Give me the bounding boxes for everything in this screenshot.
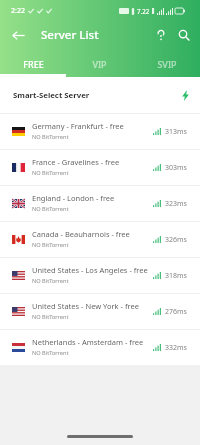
staticText: 7.22 — [137, 7, 150, 15]
staticText: Canada - Beauharnois - free — [32, 229, 130, 239]
staticText: NO BitTorrent — [32, 241, 69, 249]
button[interactable]: Netherlands - Amsterdam - free — [0, 330, 200, 365]
staticText: NO BitTorrent — [32, 133, 69, 141]
button[interactable]: France - Gravelines - free — [0, 150, 200, 185]
staticText: Germany - Frankfurt - free — [32, 121, 124, 131]
button[interactable]: United States - Los Angeles - free — [0, 258, 200, 293]
staticText: England - London - free — [32, 193, 115, 203]
button[interactable]: FREE — [0, 51, 66, 77]
staticText: NO BitTorrent — [32, 277, 69, 285]
staticText: Server List — [41, 27, 99, 43]
button[interactable]: Smart-Select Server — [0, 77, 200, 113]
staticText: NO BitTorrent — [32, 169, 69, 177]
staticText: VIP — [92, 58, 107, 70]
button[interactable]: England - London - free — [0, 186, 200, 221]
staticText: 2:22 — [11, 6, 25, 16]
button[interactable]: SVIP — [133, 51, 200, 77]
button[interactable]: Search — [173, 24, 195, 46]
staticText: United States - New York - free — [32, 301, 139, 311]
staticText: Netherlands - Amsterdam - free — [32, 337, 144, 347]
staticText: 303ms — [165, 163, 187, 173]
staticText: France - Gravelines - free — [32, 157, 120, 167]
button[interactable]: Back — [6, 23, 30, 47]
staticText: FREE — [23, 58, 44, 70]
button[interactable]: Canada - Beauharnois - free — [0, 222, 200, 257]
button[interactable]: Germany - Frankfurt - free — [0, 114, 200, 149]
staticText: 318ms — [165, 271, 187, 281]
button[interactable]: Help — [150, 24, 172, 46]
staticText: 313ms — [165, 127, 187, 137]
button[interactable]: United States - New York - free — [0, 294, 200, 329]
staticText: 323ms — [165, 199, 187, 209]
staticText: Smart-Select Server — [13, 90, 90, 101]
staticText: United States - Los Angeles - free — [32, 265, 148, 275]
staticText: NO BitTorrent — [32, 349, 69, 357]
staticText: NO BitTorrent — [32, 313, 69, 321]
button[interactable]: VIP — [66, 51, 133, 77]
staticText: 326ms — [165, 235, 187, 245]
staticText: SVIP — [157, 58, 177, 70]
staticText: NO BitTorrent — [32, 205, 69, 213]
staticText: 276ms — [165, 307, 187, 317]
staticText: 332ms — [165, 343, 187, 353]
